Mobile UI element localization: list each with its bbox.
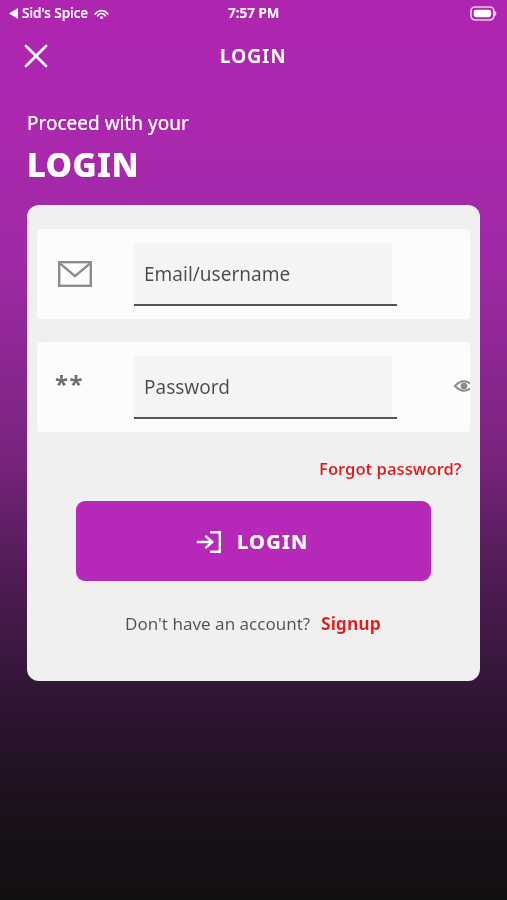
staticText: Sid's Spice bbox=[22, 4, 89, 22]
staticText: *** bbox=[55, 367, 95, 407]
button[interactable]: LOGIN bbox=[76, 501, 431, 581]
button[interactable]: Show password bbox=[442, 364, 470, 408]
staticText: LOGIN bbox=[237, 528, 309, 555]
staticText: Proceed with your bbox=[27, 110, 189, 136]
staticText: LOGIN bbox=[27, 142, 140, 187]
staticText: Don't have an account? bbox=[125, 612, 311, 635]
staticText: Email/username bbox=[144, 261, 291, 287]
button[interactable]: Forgot password? bbox=[315, 454, 466, 482]
staticText: LOGIN bbox=[220, 43, 287, 69]
button[interactable]: Email/username bbox=[37, 229, 470, 319]
staticText: Signup bbox=[321, 611, 381, 635]
button[interactable]: Signup bbox=[319, 608, 383, 638]
staticText: Password bbox=[144, 374, 230, 400]
button[interactable]: *** bbox=[37, 342, 470, 432]
staticText: 7:57 PM bbox=[228, 4, 280, 22]
button[interactable]: Close bbox=[14, 34, 58, 78]
staticText: Forgot password? bbox=[319, 457, 462, 479]
